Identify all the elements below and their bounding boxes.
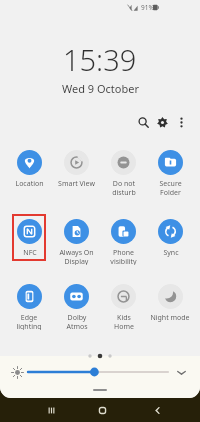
button[interactable]: Settings xyxy=(153,113,171,131)
button[interactable]: Brightness slider xyxy=(26,364,170,380)
button[interactable]: Night mode xyxy=(147,284,193,330)
button[interactable]: Kids Home xyxy=(100,284,146,330)
button[interactable]: Edge lighting xyxy=(6,284,52,330)
button[interactable]: Sync xyxy=(147,219,193,265)
staticText: Sync xyxy=(163,248,179,258)
button[interactable]: Dolby Atmos xyxy=(53,284,99,330)
button[interactable]: Home xyxy=(91,398,113,422)
staticText: NFC xyxy=(23,248,37,258)
staticText: 91% xyxy=(141,3,154,12)
button[interactable]: Smart View xyxy=(53,150,99,196)
staticText: Always On Display xyxy=(59,248,94,265)
button[interactable]: Brightness xyxy=(9,364,25,380)
staticText: Do not disturb xyxy=(112,179,136,196)
staticText: Edge lighting xyxy=(16,313,42,330)
staticText: Smart View xyxy=(58,179,95,189)
button[interactable]: Do not disturb xyxy=(100,150,146,196)
button[interactable]: Recents xyxy=(40,398,62,422)
button[interactable]: Secure Folder xyxy=(147,150,193,196)
staticText: Phone visibility xyxy=(110,248,137,265)
staticText: 15:39 xyxy=(63,40,137,79)
staticText: Dolby Atmos xyxy=(66,313,88,330)
staticText: Kids Home xyxy=(114,313,134,330)
staticText: Night mode xyxy=(150,313,190,323)
button[interactable]: Always On Display xyxy=(53,219,99,265)
button[interactable]: Search xyxy=(134,113,152,131)
button[interactable]: Back xyxy=(146,398,168,422)
button[interactable]: Expand xyxy=(173,364,189,380)
staticText: Wed 9 October xyxy=(62,81,139,96)
staticText: Secure Folder xyxy=(159,179,182,196)
button[interactable]: Location xyxy=(6,150,52,196)
staticText: Location xyxy=(15,179,44,189)
button[interactable]: Phone visibility xyxy=(100,219,146,265)
button[interactable]: NFC xyxy=(6,219,52,265)
button[interactable]: More options xyxy=(172,113,190,131)
